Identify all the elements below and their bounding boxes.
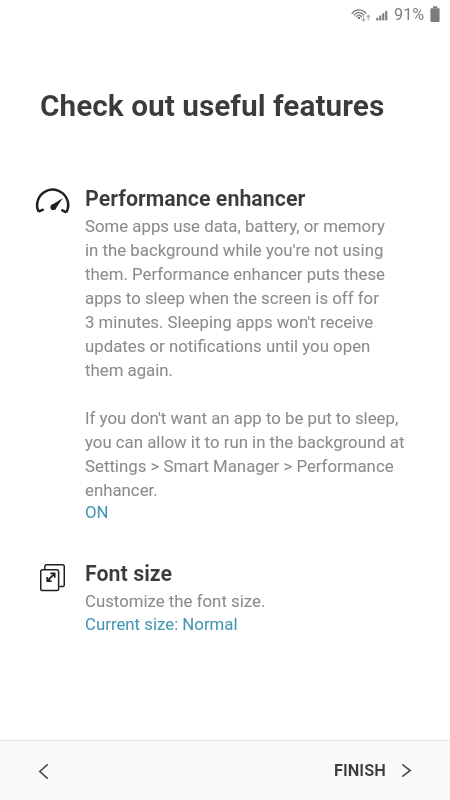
staticText: 91% [394,5,425,24]
staticText: Customize the font size. [85,588,266,612]
staticText: Performance enhancer [85,186,306,211]
button[interactable]: FINISH [328,751,417,790]
button[interactable]: ON [85,499,109,523]
staticText: FINISH [334,761,386,780]
staticText: Font size [85,561,173,586]
button[interactable]: Current size: Normal [85,611,238,635]
staticText: If you don't want an app to be put to sl… [85,405,405,501]
button[interactable]: Previous [21,749,65,793]
staticText: Check out useful features [40,88,385,123]
staticText: Some apps use data, battery, or memory i… [85,213,385,381]
